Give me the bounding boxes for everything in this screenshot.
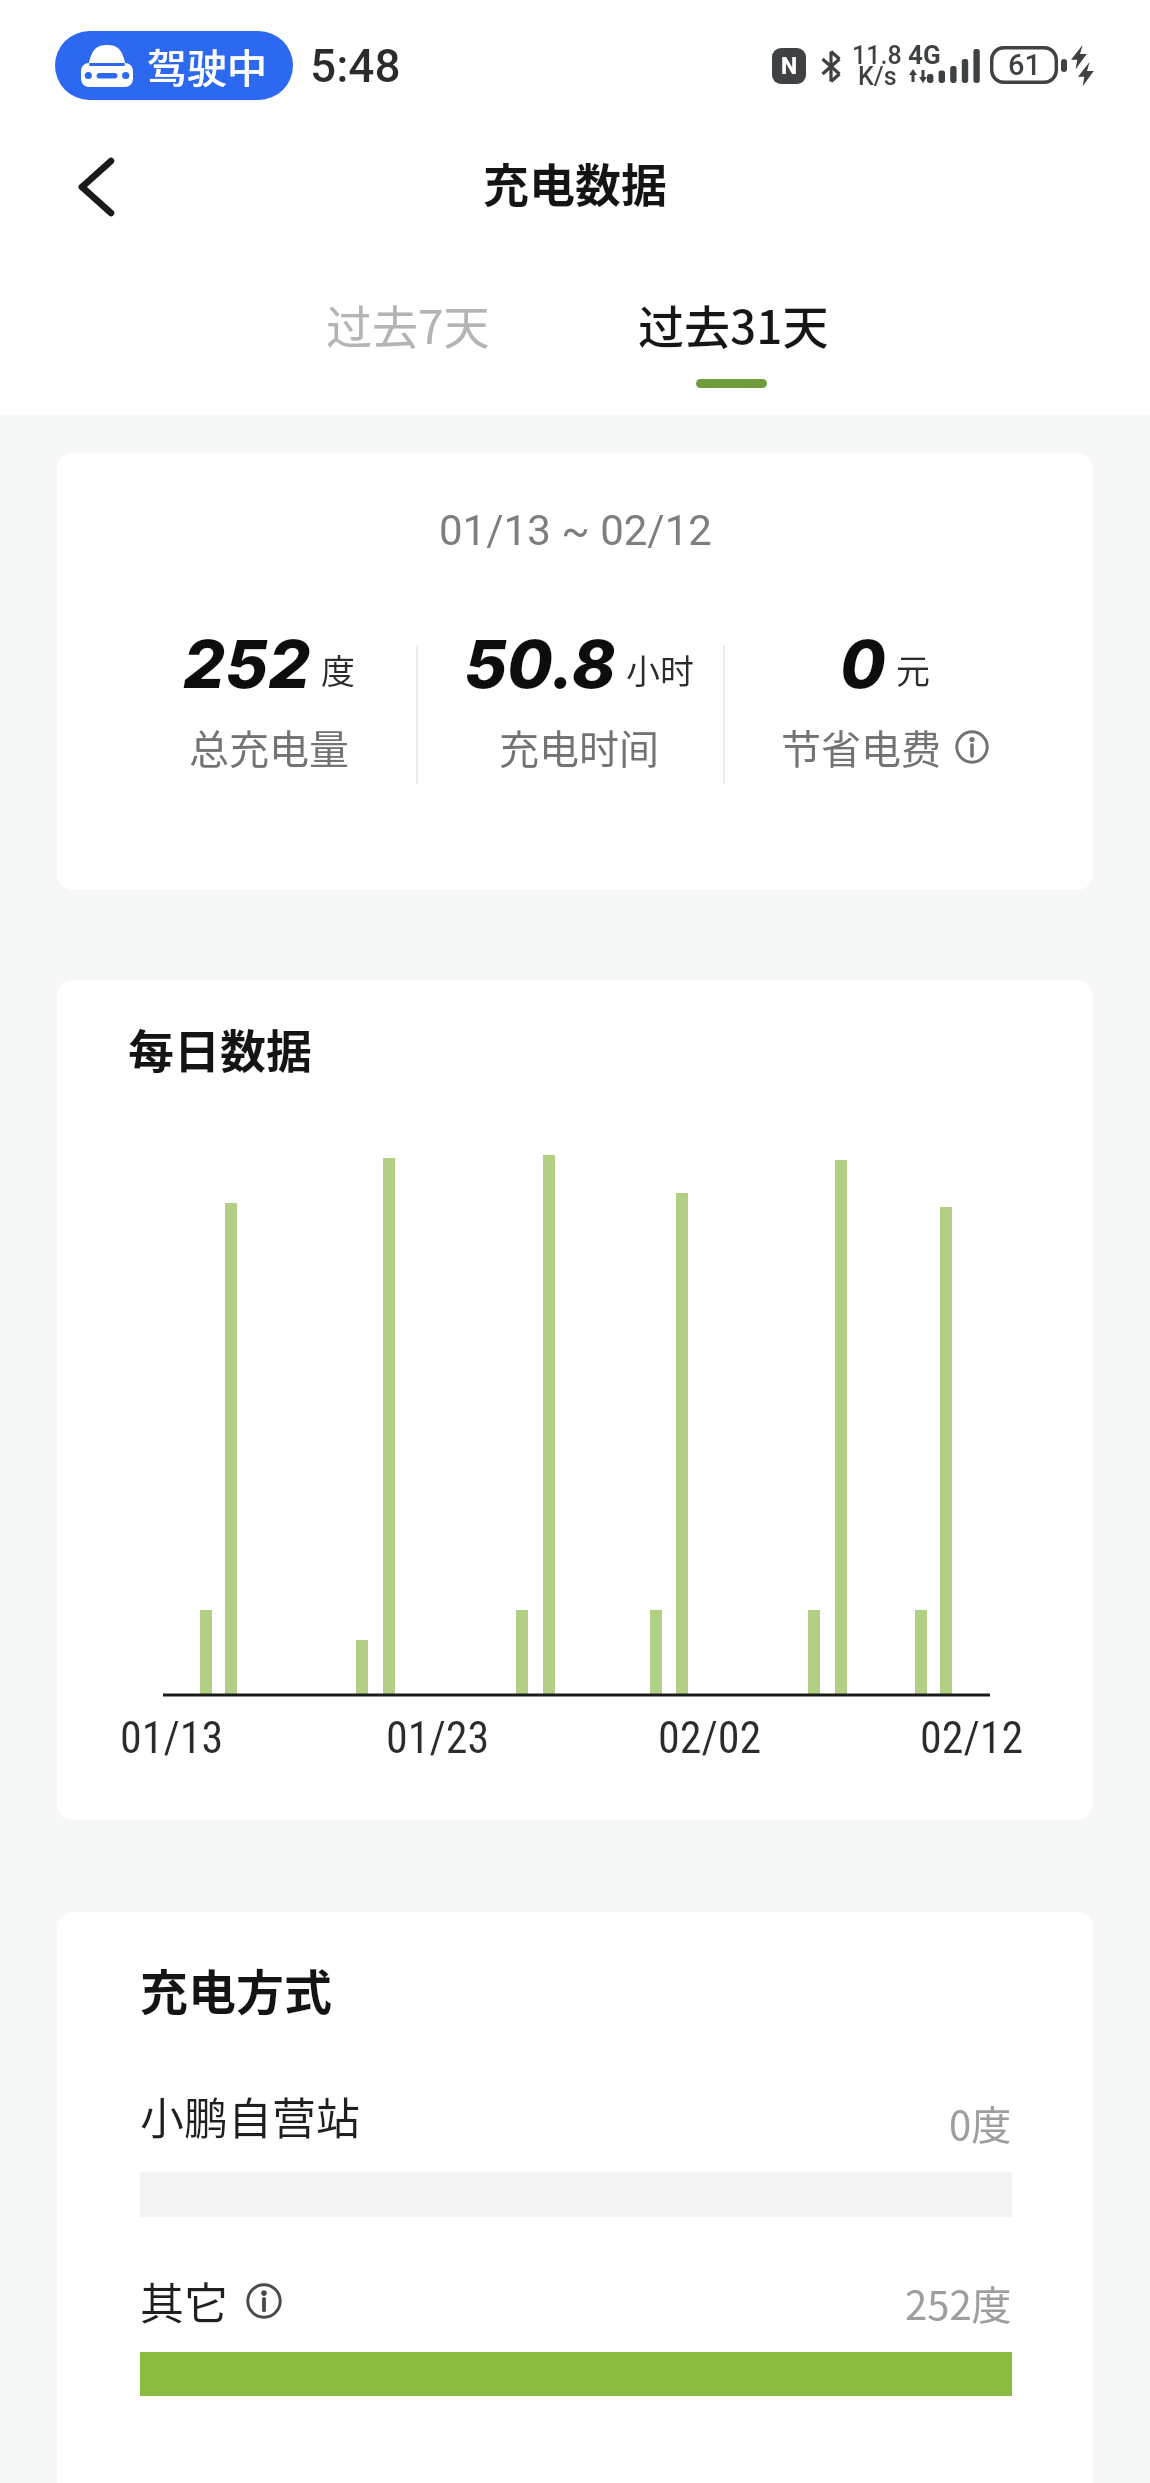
staticText: 01/23 <box>386 1712 490 1764</box>
staticText: 充电方式 <box>140 1954 333 2024</box>
staticText: 度 <box>321 645 355 694</box>
staticText: N <box>781 53 798 80</box>
staticText: 02/02 <box>658 1712 762 1764</box>
staticText: 充电数据 <box>483 149 667 216</box>
staticText: 252 <box>183 624 311 704</box>
staticText: 5:48 <box>310 39 401 93</box>
staticText: 过去31天 <box>638 291 829 358</box>
staticText: 61 <box>1008 48 1041 82</box>
staticText: K/s <box>858 62 897 91</box>
staticText: 每日数据 <box>128 1015 312 1082</box>
staticText: 0 <box>840 624 886 704</box>
staticText: 01/13 ~ 02/12 <box>439 506 712 555</box>
staticText: 小时 <box>626 645 694 694</box>
staticText: 驾驶中 <box>147 37 267 95</box>
staticText: 02/12 <box>920 1712 1024 1764</box>
staticText: 节省电费 <box>781 718 941 776</box>
staticText: 11.8 <box>852 41 902 70</box>
staticText: 其它 <box>140 2269 228 2333</box>
button[interactable] <box>52 142 142 232</box>
staticText: 0度 <box>949 2094 1012 2148</box>
button[interactable]: 过去7天 <box>298 281 518 367</box>
button[interactable]: 过去31天 <box>618 281 848 367</box>
button[interactable]: 驾驶中 <box>55 31 293 100</box>
staticText: 4G <box>908 40 941 70</box>
staticText: 过去7天 <box>326 291 490 358</box>
staticText: 01/13 <box>120 1712 224 1764</box>
staticText: 充电时间 <box>499 718 659 776</box>
staticText: 元 <box>896 645 930 694</box>
staticText: 50.8 <box>464 624 616 704</box>
staticText: 总充电量 <box>189 718 349 776</box>
staticText: 252度 <box>905 2274 1012 2328</box>
staticText: 小鹏自营站 <box>140 2084 360 2148</box>
